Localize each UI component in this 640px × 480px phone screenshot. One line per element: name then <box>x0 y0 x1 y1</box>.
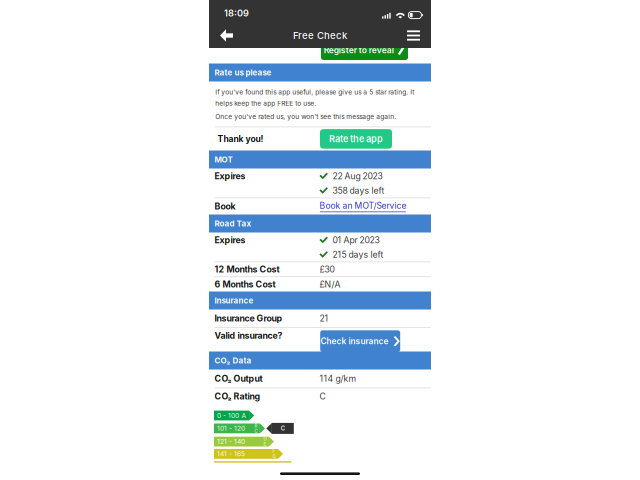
staticText: 01 Apr 2023 <box>332 235 379 245</box>
staticText: CO₂ Rating <box>214 391 260 402</box>
staticText: 215 days left <box>332 249 383 260</box>
staticText: 141 - 165 <box>217 450 245 458</box>
staticText: 114 g/km <box>319 373 356 384</box>
button[interactable]: Check insurance <box>320 330 400 352</box>
staticText: £N/A <box>319 279 340 290</box>
staticText: Rate the app <box>329 133 383 144</box>
staticText: F <box>272 448 275 454</box>
staticText: If you've found this app useful, please … <box>215 88 414 96</box>
staticText: Once you've rated us, you won't see this… <box>215 113 396 121</box>
staticText: Insurance Group <box>214 313 282 323</box>
staticText: Road Tax <box>214 219 251 228</box>
staticText: 6 Months Cost <box>214 279 275 290</box>
staticText: C <box>319 391 325 402</box>
staticText: C <box>254 428 257 434</box>
staticText: 101 - 120 <box>217 424 245 432</box>
staticText: Valid insurance? <box>214 330 282 341</box>
staticText: helps keep the app FREE to use. <box>215 99 316 107</box>
button[interactable]: Back <box>209 23 247 48</box>
staticText: CO₂ Output <box>214 373 262 384</box>
button[interactable]: Menu <box>393 23 431 48</box>
staticText: CO₂ Data <box>214 356 251 365</box>
button[interactable]: Book an MOT/Service <box>319 201 406 212</box>
staticText: Free Check <box>293 30 347 41</box>
staticText: Expires <box>214 235 245 245</box>
staticText: Check insurance <box>321 336 389 346</box>
staticText: E <box>263 442 266 447</box>
staticText: A <box>242 411 247 420</box>
button[interactable]: Rate the app <box>320 129 392 149</box>
staticText: 21 <box>319 313 328 323</box>
staticText: 358 days left <box>332 185 384 196</box>
staticText: Book <box>214 201 235 212</box>
staticText: Thank you! <box>217 134 263 144</box>
staticText: Register to reveal <box>324 45 394 55</box>
staticText: B <box>254 423 257 428</box>
staticText: Rate us please <box>214 68 271 77</box>
staticText: D <box>263 436 266 442</box>
staticText: C <box>281 425 285 432</box>
staticText: 18:09 <box>224 7 249 19</box>
staticText: 121 - 140 <box>217 438 245 446</box>
staticText: Insurance <box>214 296 253 305</box>
staticText: Book an MOT/Service <box>319 201 406 211</box>
button[interactable]: Register to reveal <box>321 40 408 60</box>
staticText: Expires <box>214 171 245 181</box>
staticText: 22 Aug 2023 <box>332 171 382 181</box>
staticText: 12 Months Cost <box>214 264 279 275</box>
staticText: G <box>272 454 275 459</box>
staticText: MOT <box>214 155 232 164</box>
staticText: 0 - 100 <box>217 411 239 420</box>
staticText: £30 <box>319 264 334 275</box>
